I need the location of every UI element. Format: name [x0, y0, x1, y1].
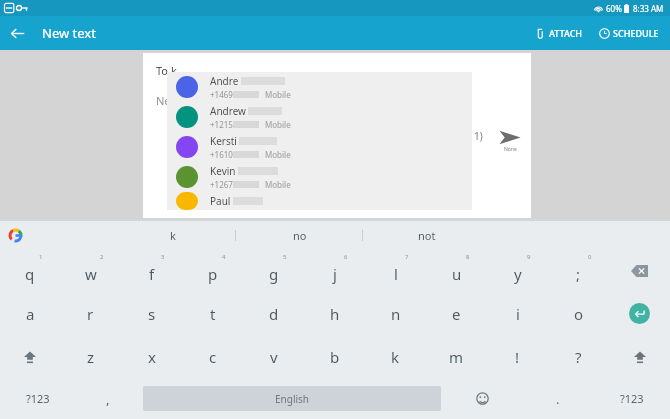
staticText: To	[156, 63, 169, 78]
button[interactable]: i	[487, 292, 548, 335]
button[interactable]: Google	[6, 226, 24, 244]
staticText: New	[156, 93, 179, 108]
button[interactable]: k	[110, 221, 236, 249]
button[interactable]: Paul	[167, 192, 472, 210]
staticText: n	[391, 304, 401, 324]
staticText: +1469	[210, 89, 233, 100]
staticText: SCHEDULE	[613, 27, 659, 39]
staticText: ATTACH	[549, 27, 583, 39]
button[interactable]: a	[0, 292, 60, 335]
staticText: d	[269, 304, 279, 324]
staticText: 4	[222, 253, 226, 261]
button[interactable]: ?	[548, 335, 609, 378]
button[interactable]: z	[60, 335, 121, 378]
button[interactable]: .	[522, 378, 594, 419]
button[interactable]: 0	[548, 249, 609, 292]
staticText: 6	[344, 253, 348, 261]
button[interactable]: Andre	[167, 72, 472, 102]
button[interactable]: 3	[121, 249, 182, 292]
staticText: o	[574, 304, 584, 324]
button[interactable]: English	[143, 386, 441, 411]
staticText: s	[148, 304, 156, 324]
staticText: f	[149, 264, 155, 284]
button[interactable]: 9	[487, 249, 548, 292]
staticText: k	[391, 347, 400, 367]
button[interactable]: Backspace	[609, 249, 670, 292]
button[interactable]: 8	[426, 249, 487, 292]
staticText: Mobile	[265, 179, 291, 190]
staticText: .	[556, 390, 560, 408]
button[interactable]: 2	[60, 249, 121, 292]
button[interactable]: m	[426, 335, 487, 378]
button[interactable]: Back	[0, 16, 34, 50]
button[interactable]: d	[243, 292, 304, 335]
button[interactable]: v	[243, 335, 304, 378]
button[interactable]: r	[60, 292, 121, 335]
button[interactable]: Enter	[609, 292, 670, 335]
staticText: y	[514, 264, 522, 284]
button[interactable]: n	[365, 292, 426, 335]
staticText: k	[171, 63, 177, 78]
staticText: 3	[161, 253, 165, 261]
staticText: 8:33 AM	[633, 3, 664, 14]
staticText: r	[87, 304, 94, 324]
staticText: 9	[527, 253, 531, 261]
staticText: k	[170, 228, 176, 243]
staticText: x	[148, 347, 156, 367]
button[interactable]: h	[304, 292, 365, 335]
staticText: !	[515, 347, 520, 367]
staticText: English	[275, 392, 310, 406]
button[interactable]: Andrew	[167, 102, 472, 132]
button[interactable]: x	[121, 335, 182, 378]
button[interactable]: 5	[243, 249, 304, 292]
staticText: ,	[106, 390, 110, 408]
button[interactable]: ?123	[594, 378, 670, 419]
button[interactable]: Kevin	[167, 162, 472, 192]
button[interactable]: !	[487, 335, 548, 378]
button[interactable]: 1	[0, 249, 60, 292]
button[interactable]: s	[121, 292, 182, 335]
button[interactable]: ,	[75, 378, 141, 419]
staticText: Mobile	[265, 119, 291, 130]
button[interactable]: ?123	[0, 378, 75, 419]
staticText: t	[210, 304, 216, 324]
staticText: not	[418, 228, 436, 243]
button[interactable]: Shift	[0, 335, 60, 378]
staticText: 7	[405, 253, 409, 261]
staticText: q	[25, 264, 35, 284]
button[interactable]: Send	[495, 125, 525, 157]
button[interactable]: SCHEDULE	[594, 21, 664, 45]
button[interactable]: e	[426, 292, 487, 335]
staticText: a	[26, 304, 35, 324]
button[interactable]: o	[548, 292, 609, 335]
staticText: i	[516, 304, 520, 324]
staticText: Kevin	[210, 164, 236, 178]
button[interactable]: Shift	[609, 335, 670, 378]
staticText: z	[87, 347, 95, 367]
staticText: p	[208, 264, 218, 284]
staticText: 60%	[606, 3, 622, 14]
button[interactable]: ATTACH	[530, 21, 588, 45]
button[interactable]: 7	[365, 249, 426, 292]
button[interactable]: t	[182, 292, 243, 335]
staticText: 1	[39, 253, 43, 261]
button[interactable]: Kersti	[167, 132, 472, 162]
button[interactable]: 4	[182, 249, 243, 292]
button[interactable]: no	[236, 221, 363, 249]
button[interactable]: b	[304, 335, 365, 378]
staticText: 5	[283, 253, 287, 261]
staticText: Andre	[210, 74, 239, 88]
staticText: 8	[466, 253, 470, 261]
staticText: ?123	[620, 391, 644, 406]
button[interactable]: 6	[304, 249, 365, 292]
button[interactable]: k	[365, 335, 426, 378]
staticText: b	[330, 347, 340, 367]
button[interactable]: c	[182, 335, 243, 378]
staticText: l	[394, 264, 398, 284]
button[interactable]: not	[363, 221, 490, 249]
button[interactable]: Emoji	[443, 378, 522, 419]
staticText: Kersti	[210, 134, 237, 148]
staticText: Paul	[210, 194, 231, 208]
staticText: ;	[576, 264, 581, 284]
staticText: w	[85, 264, 97, 284]
